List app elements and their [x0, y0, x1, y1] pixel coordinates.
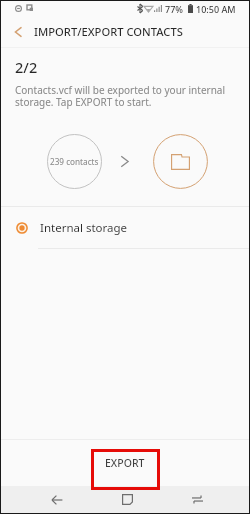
- button[interactable]: Back: [39, 486, 75, 513]
- button[interactable]: EXPORT: [86, 442, 164, 484]
- staticText: IMPORT/EXPORT CONTACTS: [34, 24, 183, 39]
- staticText: EXPORT: [105, 456, 145, 470]
- staticText: 2/2: [15, 57, 38, 77]
- staticText: 239 contacts: [50, 156, 99, 167]
- staticText: Internal storage: [40, 220, 128, 236]
- staticText: 77%: [165, 3, 183, 15]
- button[interactable]: Recent apps: [179, 486, 215, 513]
- button[interactable]: Home: [109, 486, 145, 513]
- staticText: Contacts.vcf will be exported to your in…: [15, 83, 229, 109]
- staticText: 10:50 AM: [196, 3, 236, 15]
- button[interactable]: Internal storage: [1, 207, 249, 248]
- button[interactable]: Navigate up: [4, 18, 32, 46]
